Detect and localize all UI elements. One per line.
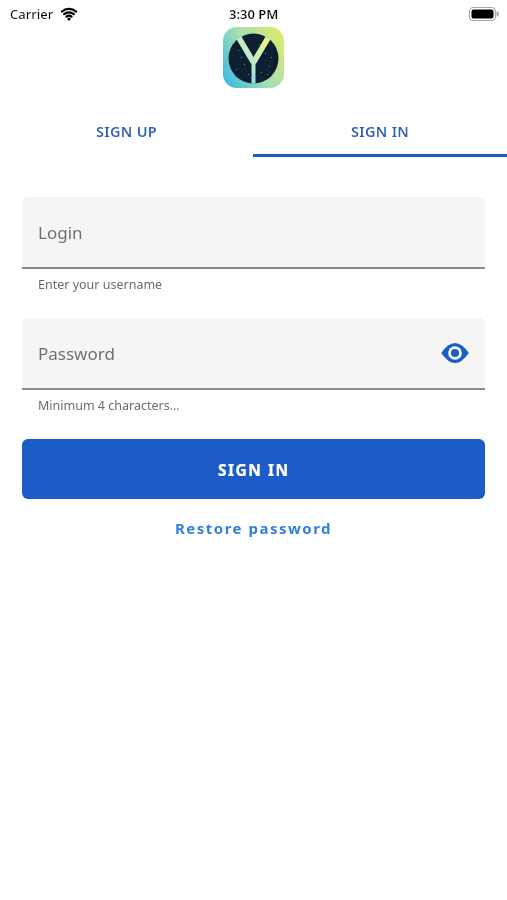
staticText: 3:30 PM <box>229 5 279 23</box>
staticText: Minimum 4 characters... <box>38 397 180 414</box>
staticText: Password <box>38 342 115 365</box>
button[interactable]: Restore password <box>175 518 333 538</box>
button[interactable]: SIGN IN <box>22 439 485 499</box>
button[interactable]: Password <box>22 318 485 388</box>
button[interactable]: SIGN IN <box>253 104 507 157</box>
staticText: Restore password <box>175 518 333 538</box>
staticText: Login <box>38 221 83 244</box>
staticText: SIGN IN <box>218 459 290 480</box>
staticText: SIGN UP <box>96 121 157 141</box>
staticText: Enter your username <box>38 276 163 293</box>
staticText: Carrier <box>10 5 54 23</box>
button[interactable]: SIGN UP <box>0 104 253 157</box>
button[interactable] <box>441 339 469 367</box>
button[interactable]: Login <box>22 197 485 267</box>
staticText: SIGN IN <box>351 121 410 141</box>
